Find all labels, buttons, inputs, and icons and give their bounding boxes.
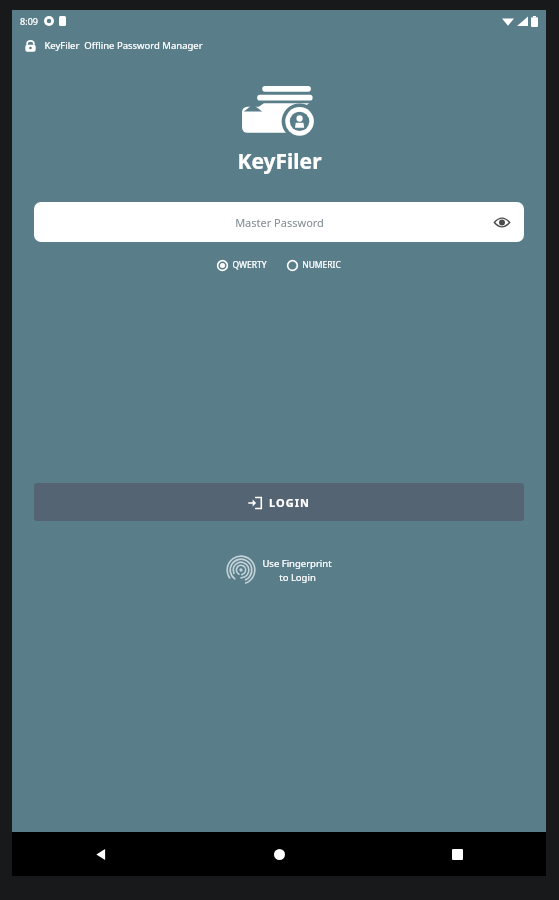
staticText: to Login [279, 571, 316, 584]
button[interactable]: Use Fingerprint [222, 551, 336, 589]
staticText: Master Password [235, 215, 324, 230]
button[interactable]: Show password [491, 211, 513, 233]
staticText: QWERTY [232, 259, 267, 271]
other: Locked [22, 37, 38, 53]
button[interactable]: Home [190, 832, 368, 876]
staticText: LOGIN [269, 495, 310, 510]
button[interactable]: QWERTY [216, 257, 268, 273]
staticText: NUMERIC [302, 259, 341, 271]
button[interactable]: NUMERIC [286, 257, 342, 273]
button[interactable]: Recents [368, 832, 546, 876]
button[interactable]: Master Password [34, 202, 524, 242]
staticText: 8:09 [20, 15, 38, 27]
staticText: KeyFiler Offline Password Manager [44, 39, 203, 52]
button[interactable]: LOGIN [34, 483, 524, 521]
staticText: Use Fingerprint [262, 557, 332, 570]
staticText: KeyFiler [237, 147, 322, 176]
button[interactable]: Back [12, 832, 190, 876]
